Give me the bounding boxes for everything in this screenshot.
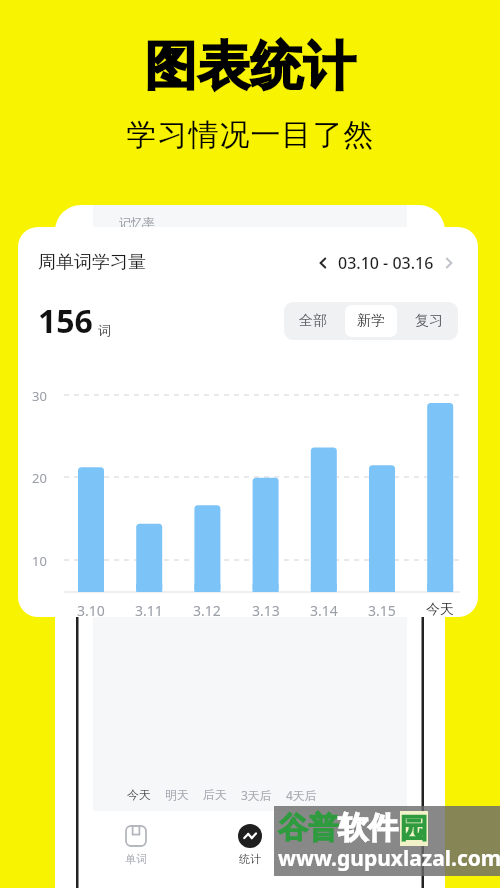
staticText: 今天 [127,787,151,802]
staticText: 30 [32,387,47,405]
staticText: 156 [38,299,93,343]
staticText: www.gupuxlazal.com [278,844,500,873]
staticText: 90% [115,257,137,272]
button[interactable]: Previous week [314,252,458,274]
staticText: 3.15 [368,601,396,617]
staticText: 今天 [426,601,454,617]
staticText: 30% [115,386,137,401]
staticText: 4天后 [286,787,317,803]
staticText: 10 [32,552,47,570]
button[interactable]: 单词 [79,819,193,866]
staticText: 复习 [415,312,443,330]
button[interactable]: 统计 [193,819,307,866]
staticText: 3.13 [252,601,280,617]
staticText: 全部 [299,312,327,330]
staticText: 3.10 [77,601,105,617]
staticText: 软件 [338,809,398,847]
button[interactable]: 复习 [403,305,455,337]
staticText: 学习情况一目了然 [126,116,374,154]
button[interactable]: Next week [440,254,458,272]
staticText: 统计 [239,852,261,866]
staticText: 03.10 - 03.16 [338,252,434,274]
staticText: 记忆率 [119,215,155,230]
button[interactable]: 全部 [287,305,339,337]
staticText: 周单词学习量 [38,251,146,274]
staticText: 3.14 [310,601,338,617]
staticText: 明天 [165,787,189,802]
staticText: 新学 [357,312,385,330]
staticText: 20 [32,469,47,487]
staticText: 图表统计 [144,34,356,100]
staticText: 单词 [125,852,147,866]
staticText: 园 [400,811,428,846]
staticText: 后天 [203,787,227,802]
button[interactable]: Previous week [314,254,332,272]
staticText: 3.12 [193,601,221,617]
staticText: 3.11 [135,601,163,617]
staticText: 词 [98,322,111,338]
button[interactable]: 新学 [345,305,397,337]
staticText: 谷普 [278,809,338,847]
staticText: 3天后 [241,787,272,803]
